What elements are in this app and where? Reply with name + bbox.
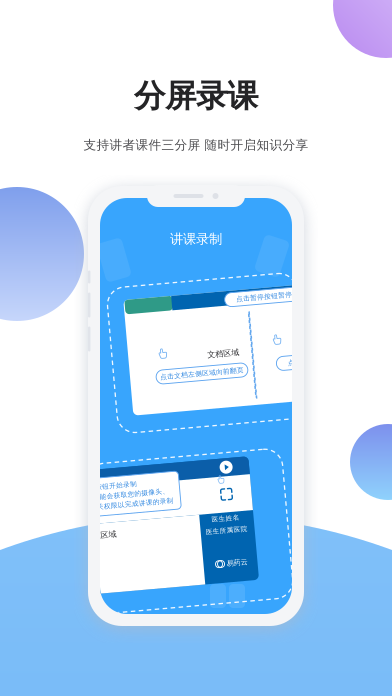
staticText: 点击文档右 [286,365,321,373]
staticText: 麦克风、录屏相关权限以完成讲课的录制 [47,502,173,510]
staticText: 点击暂停按钮暂停录 [240,297,303,305]
staticText: 点击按钮开始录制 [82,482,138,490]
staticText: 分屏录课 [134,76,258,116]
staticText: 易药云 [223,564,244,574]
staticText: 过程中易学术可能会获取您的摄像头、 [50,492,169,500]
staticText: 文档区域 [84,525,116,535]
staticText: 医生所属医院 [205,532,247,540]
staticText: 医生姓名 [212,520,240,528]
staticText: 支持讲者课件三分屏 随时开启知识分享 [83,137,308,153]
staticText: 讲课录制 [170,231,222,247]
staticText: 文档区域 [207,349,239,359]
staticText: 点击文档左侧区域向前翻页 [158,368,242,376]
